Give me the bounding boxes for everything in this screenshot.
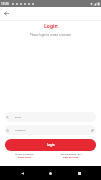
staticText: Please login to create a session	[30, 33, 71, 37]
staticText: Password	[15, 129, 26, 132]
button[interactable]: Forgot Password	[15, 153, 34, 159]
staticText: Login	[44, 23, 58, 30]
button[interactable]: Email	[5, 112, 96, 122]
button[interactable]: Show password	[90, 128, 94, 132]
button[interactable]: Back	[16, 167, 29, 180]
staticText: Reset Here	[18, 155, 31, 158]
staticText: Forgot Password	[15, 153, 34, 156]
staticText: Email	[15, 116, 21, 119]
staticText: 18:36	[1, 2, 10, 6]
staticText: Not registered yet ?	[60, 153, 82, 156]
button[interactable]: Password	[5, 125, 96, 135]
staticText: Sign up Here	[63, 155, 79, 158]
button[interactable]: Login	[5, 139, 96, 151]
button[interactable]: Home	[44, 167, 57, 180]
staticText: Login	[47, 143, 55, 147]
button[interactable]: Recents	[73, 167, 86, 180]
button[interactable]: Not registered yet ?	[60, 153, 82, 159]
button[interactable]: Back	[1, 8, 12, 19]
